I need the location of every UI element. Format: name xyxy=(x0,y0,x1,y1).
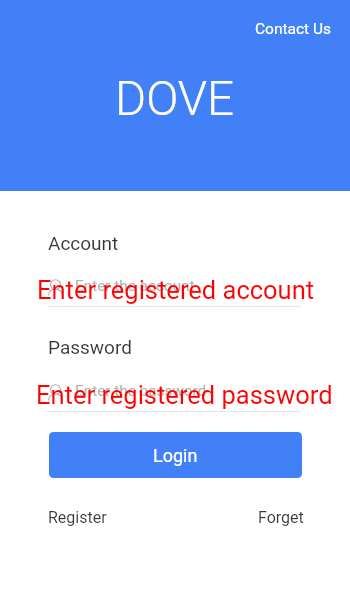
button[interactable]: Forget xyxy=(258,508,304,527)
button[interactable]: Password xyxy=(48,374,301,412)
staticText: Enter registered account xyxy=(37,275,315,305)
button[interactable]: Account xyxy=(48,269,301,307)
other: Account xyxy=(48,278,63,295)
staticText: Contact Us xyxy=(255,20,332,38)
staticText: Forget xyxy=(258,508,304,527)
staticText: Enter registered password xyxy=(36,380,333,410)
button[interactable]: Register xyxy=(48,508,107,527)
other: Password xyxy=(48,383,63,400)
button[interactable]: Contact Us xyxy=(247,14,340,44)
staticText: Password xyxy=(48,336,132,358)
staticText: DOVE xyxy=(115,71,235,127)
staticText: Login xyxy=(153,445,198,466)
staticText: Register xyxy=(48,508,107,527)
button[interactable]: Login xyxy=(49,432,302,478)
staticText: Account xyxy=(48,232,119,254)
staticText: Enter the account xyxy=(75,277,195,295)
staticText: Enter the password xyxy=(75,382,207,400)
